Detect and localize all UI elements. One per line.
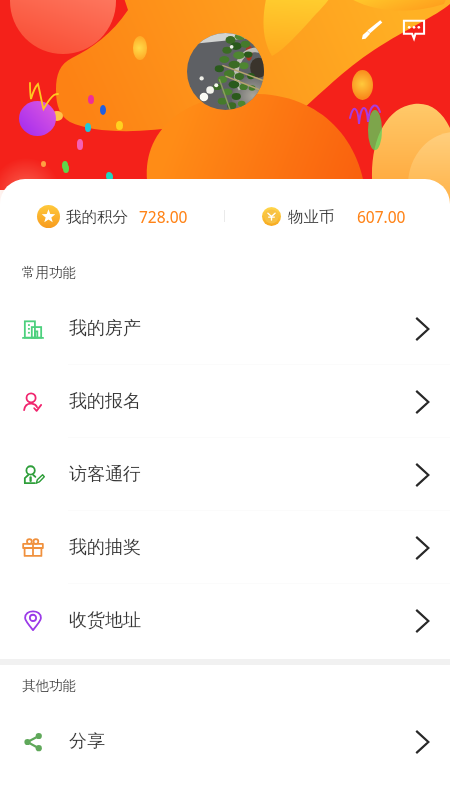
staticText: 607.00: [357, 206, 406, 227]
button[interactable]: 我的房产: [0, 292, 450, 365]
staticText: 其他功能: [22, 677, 76, 694]
staticText: 728.00: [139, 206, 188, 227]
staticText: 我的房产: [69, 317, 141, 340]
staticText: 访客通行: [69, 463, 141, 486]
staticText: 我的报名: [69, 390, 141, 413]
staticText: 常用功能: [22, 264, 76, 281]
button[interactable]: 我的报名: [0, 365, 450, 438]
staticText: 我的积分: [66, 207, 128, 227]
button[interactable]: Edit: [355, 13, 387, 45]
staticText: 物业币: [288, 207, 335, 227]
button[interactable]: Messages: [398, 13, 430, 45]
button[interactable]: 分享: [0, 705, 450, 778]
button[interactable]: 收货地址: [0, 584, 450, 657]
staticText: 分享: [69, 730, 105, 753]
staticText: 收货地址: [69, 609, 141, 632]
button[interactable]: 我的抽奖: [0, 511, 450, 584]
button[interactable]: 访客通行: [0, 438, 450, 511]
button[interactable]: Avatar: [187, 33, 264, 110]
staticText: 我的抽奖: [69, 536, 141, 559]
